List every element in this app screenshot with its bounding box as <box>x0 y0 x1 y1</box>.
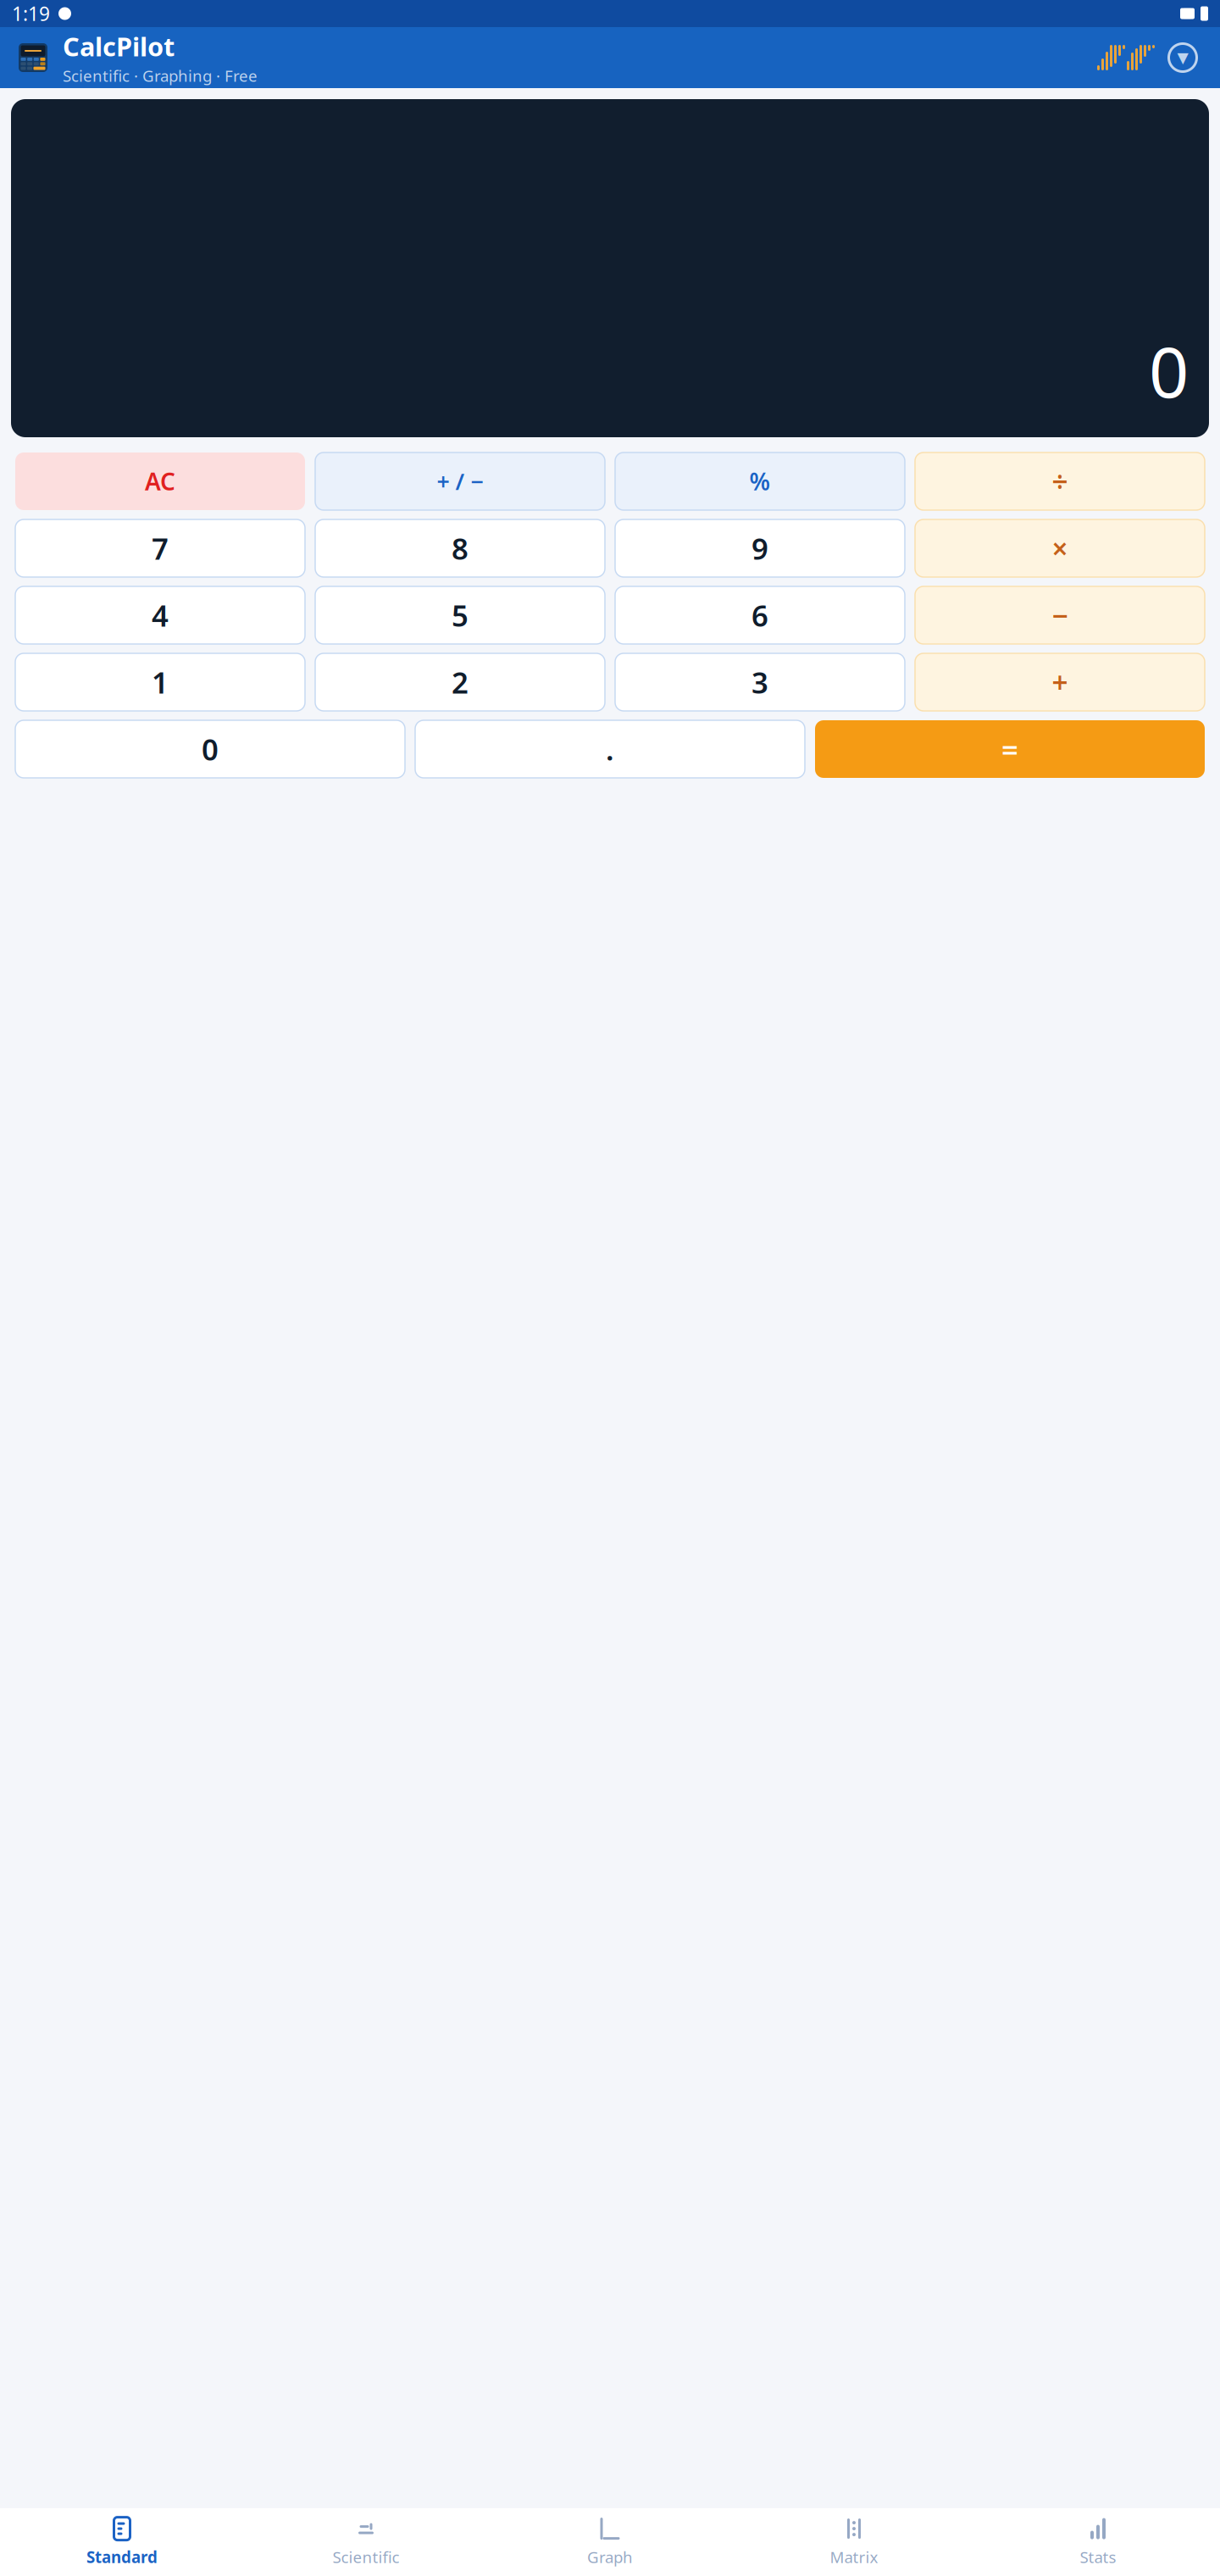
button[interactable]: 0 <box>15 720 405 778</box>
staticText: 2 <box>452 663 469 702</box>
staticText: = <box>1001 730 1018 769</box>
staticText: AC <box>145 466 175 497</box>
staticText: 0 <box>1149 324 1189 417</box>
button[interactable]: AC <box>15 452 305 510</box>
staticText: Matrix <box>830 2546 878 2567</box>
button[interactable]: 1 <box>15 653 305 711</box>
button[interactable]: 9 <box>615 519 905 577</box>
staticText: Standard <box>86 2546 158 2567</box>
button[interactable]: × <box>915 519 1205 577</box>
staticText: Graph <box>587 2546 633 2567</box>
staticText: + <box>1052 663 1068 701</box>
staticText: CalcPilot <box>63 29 175 63</box>
button[interactable]: % <box>615 452 905 510</box>
button[interactable]: Scientific <box>244 2515 488 2569</box>
staticText: 5 <box>452 596 469 635</box>
staticText: 4 <box>152 596 169 635</box>
button[interactable]: . <box>415 720 805 778</box>
staticText: 1 <box>152 663 169 702</box>
staticText: ÷ <box>1052 463 1068 500</box>
button[interactable]: = <box>815 720 1205 778</box>
staticText: Stats <box>1080 2546 1116 2567</box>
button[interactable]: Matrix <box>732 2515 976 2569</box>
staticText: 7 <box>152 529 169 568</box>
button[interactable]: 7 <box>15 519 305 577</box>
staticText: 1:19 <box>12 1 50 26</box>
staticText: − <box>1052 596 1068 634</box>
button[interactable]: + <box>915 653 1205 711</box>
staticText: % <box>749 466 771 497</box>
button[interactable]: − <box>915 586 1205 644</box>
staticText: ▼ <box>1177 49 1188 66</box>
button[interactable]: Stats <box>976 2515 1220 2569</box>
staticText: 9 <box>751 529 768 568</box>
staticText: × <box>1052 530 1068 567</box>
button[interactable]: 5 <box>315 586 605 644</box>
button[interactable]: Standard <box>0 2515 244 2569</box>
staticText: + / − <box>437 466 483 496</box>
button[interactable]: 8 <box>315 519 605 577</box>
staticText: . <box>606 730 614 769</box>
staticText: 6 <box>751 596 768 635</box>
staticText: Scientific · Graphing · Free <box>63 65 258 86</box>
staticText: Scientific <box>333 2546 399 2567</box>
button[interactable]: Graph <box>488 2515 732 2569</box>
staticText: 0 <box>202 730 219 769</box>
button[interactable]: More options <box>1164 39 1201 76</box>
button[interactable]: 3 <box>615 653 905 711</box>
button[interactable]: + / − <box>315 452 605 510</box>
button[interactable]: 6 <box>615 586 905 644</box>
staticText: 8 <box>452 529 469 568</box>
button[interactable]: ÷ <box>915 452 1205 510</box>
button[interactable]: 2 <box>315 653 605 711</box>
staticText: 3 <box>751 663 768 702</box>
button[interactable]: 4 <box>15 586 305 644</box>
